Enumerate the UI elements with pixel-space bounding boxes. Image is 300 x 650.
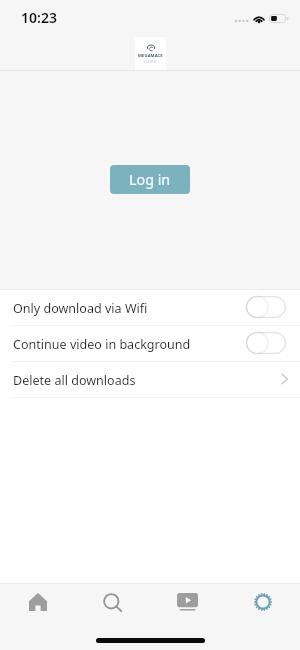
button[interactable]: Videos [150, 584, 225, 620]
button[interactable]: Search [75, 584, 150, 620]
staticText: Continue video in background [13, 336, 191, 353]
button[interactable] [246, 332, 286, 356]
button[interactable]: Continue video in background [0, 326, 300, 362]
staticText: Log in [129, 170, 171, 189]
staticText: MEGAMACE [138, 53, 163, 59]
button[interactable]: Delete all downloads [0, 362, 300, 398]
button[interactable]: Only download via Wifi [0, 290, 300, 326]
button[interactable]: Log in [110, 165, 190, 194]
staticText: 10:23 [21, 8, 57, 27]
other: Open [281, 373, 289, 385]
button[interactable]: Settings [225, 584, 300, 620]
staticText: Delete all downloads [13, 372, 136, 389]
button[interactable] [246, 296, 286, 320]
staticText: Only download via Wifi [13, 300, 148, 317]
staticText: CLOUD [144, 60, 157, 64]
button[interactable]: Home [0, 584, 75, 620]
